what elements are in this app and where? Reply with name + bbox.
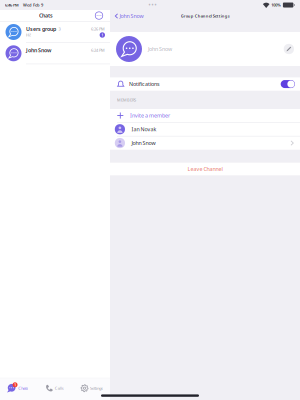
staticText: Notifications [129, 80, 160, 88]
staticText: Chats [39, 12, 53, 19]
staticText: 3 [58, 26, 60, 32]
button[interactable]: John Snow [0, 43, 110, 64]
staticText: John Snow [119, 12, 143, 20]
button[interactable]: Settings [81, 382, 103, 395]
staticText: John Snow [148, 45, 172, 53]
staticText: ••• [148, 1, 157, 9]
button[interactable]: 1 [6, 382, 28, 395]
button[interactable]: Edit channel name [284, 44, 294, 54]
staticText: Hi! [26, 32, 31, 38]
staticText: Users group [26, 25, 56, 33]
staticText: Group Channel Settings [181, 13, 230, 19]
button[interactable]: Notifications [110, 77, 300, 91]
staticText: Invite a member [130, 112, 170, 119]
staticText: MEMBERS [117, 97, 136, 102]
staticText: 1 [14, 382, 16, 387]
button[interactable]: Invite a member [110, 109, 300, 123]
staticText: Chats [18, 385, 28, 391]
button[interactable]: John Snow [110, 10, 146, 22]
staticText: John Snow [131, 139, 155, 147]
button[interactable]: Users group [0, 22, 110, 43]
button[interactable]: Ian Novak [110, 123, 300, 136]
button[interactable]: Calls [45, 382, 64, 395]
button[interactable]: Compose [92, 9, 106, 23]
button[interactable]: Leave Channel [110, 163, 300, 175]
staticText: 6:46 PM [5, 2, 19, 8]
staticText: Leave Channel [187, 165, 222, 173]
staticText: Ian Novak [131, 126, 156, 133]
staticText: John Snow [26, 47, 51, 54]
staticText: Calls [55, 385, 64, 391]
button[interactable]: John Snow [110, 136, 300, 150]
staticText: 6:24 PM [91, 48, 105, 53]
staticText: Settings [90, 385, 103, 391]
staticText: Wed Feb 9 [23, 2, 43, 8]
staticText: 6:26 PM [91, 26, 105, 32]
staticText: 1 [101, 32, 103, 38]
staticText: 100% [271, 2, 281, 8]
